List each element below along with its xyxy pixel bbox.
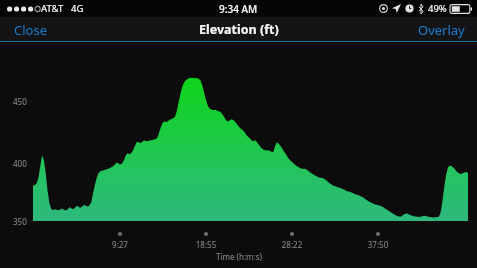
staticText: Close (14, 21, 47, 39)
staticText: Overlay (418, 21, 465, 39)
staticText: 18:55 (192, 239, 220, 250)
staticText: 350 (13, 216, 27, 227)
button[interactable]: Overlay (406, 18, 477, 42)
staticText: 49% (428, 2, 447, 15)
staticText: 9:34 AM (219, 2, 258, 16)
staticText: 37:50 (364, 239, 392, 250)
staticText: AT&T (41, 2, 64, 15)
button[interactable]: Close (0, 18, 61, 42)
staticText: 400 (13, 158, 27, 169)
staticText: 28:22 (278, 239, 306, 250)
staticText: Time (h:m:s) (216, 251, 262, 262)
staticText: 9:27 (106, 239, 134, 250)
staticText: 450 (13, 96, 27, 107)
staticText: 4G (71, 2, 84, 15)
staticText: Elevation (ft) (199, 21, 279, 38)
